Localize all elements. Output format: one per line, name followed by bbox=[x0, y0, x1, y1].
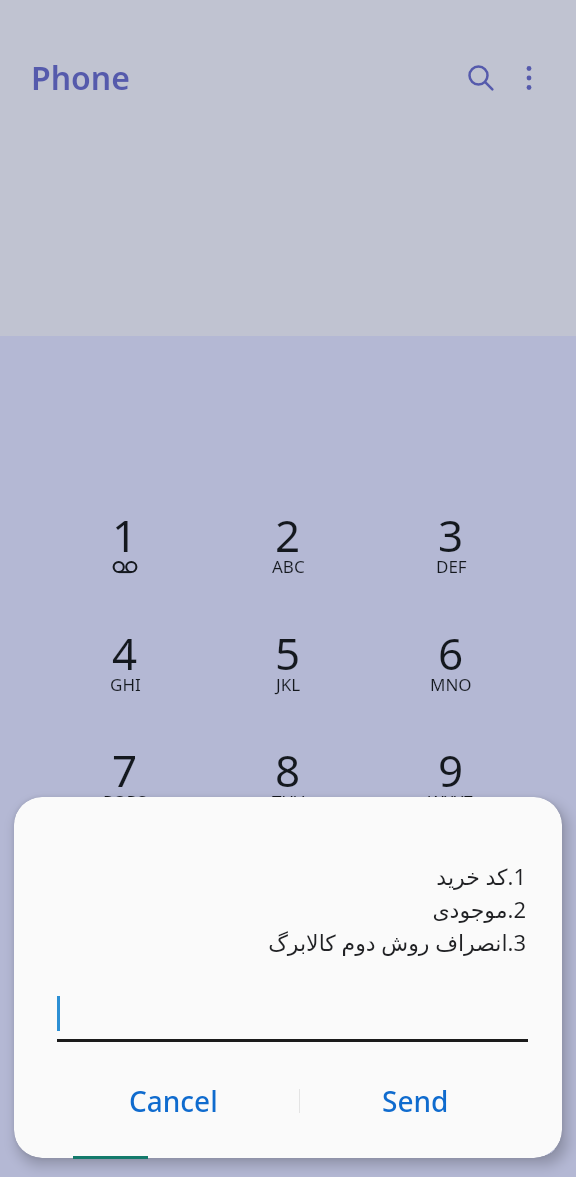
staticText: ABC bbox=[272, 555, 305, 578]
button[interactable]: 9 bbox=[376, 736, 526, 848]
staticText: Phone bbox=[31, 56, 130, 100]
staticText: 8 bbox=[275, 740, 301, 800]
button[interactable]: 2 bbox=[213, 501, 363, 613]
staticText: 1.کد خرید 2.موجودی 3.انصراف روش دوم کالا… bbox=[14, 861, 526, 958]
staticText: GHI bbox=[110, 673, 141, 696]
staticText: PQRS bbox=[103, 790, 147, 813]
staticText: JKL bbox=[276, 673, 301, 696]
staticText: Cancel bbox=[129, 1082, 218, 1120]
button[interactable]: 5 bbox=[213, 619, 363, 731]
button[interactable]: 8 bbox=[213, 736, 363, 848]
staticText: 4 bbox=[112, 623, 138, 683]
button[interactable]: 3 bbox=[376, 501, 526, 613]
button[interactable]: More options bbox=[497, 46, 561, 110]
button[interactable]: Search bbox=[449, 46, 513, 110]
button[interactable]: Send bbox=[330, 1066, 500, 1136]
staticText: TUV bbox=[272, 790, 305, 813]
button[interactable]: Reply input bbox=[57, 987, 528, 1042]
staticText: WXYZ bbox=[428, 790, 474, 813]
staticText: MNO bbox=[430, 673, 472, 696]
staticText: 7 bbox=[112, 740, 138, 800]
staticText: DEF bbox=[436, 555, 467, 578]
staticText: 1 bbox=[112, 505, 138, 565]
staticText: 3 bbox=[438, 505, 464, 565]
staticText: 6 bbox=[438, 623, 464, 683]
staticText: Send bbox=[382, 1082, 449, 1120]
button[interactable]: 7 bbox=[50, 736, 200, 848]
button[interactable]: Cancel bbox=[88, 1066, 258, 1136]
button[interactable]: 4 bbox=[50, 619, 200, 731]
button[interactable]: 1 bbox=[50, 501, 200, 613]
other: Voicemail bbox=[50, 560, 200, 574]
staticText: 9 bbox=[438, 740, 464, 800]
staticText: 2 bbox=[275, 505, 301, 565]
button[interactable]: 6 bbox=[376, 619, 526, 731]
staticText: 5 bbox=[275, 623, 301, 683]
